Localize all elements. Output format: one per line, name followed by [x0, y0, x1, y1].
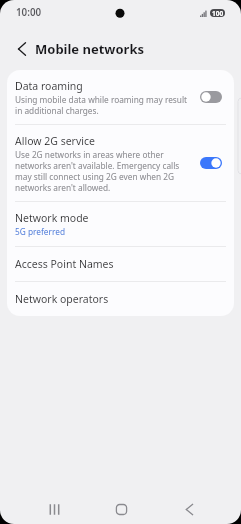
staticText: 10:00 [16, 6, 42, 19]
button[interactable]: Navigate up [9, 36, 35, 62]
button[interactable]: Data roaming [7, 70, 234, 124]
staticText: Network mode [15, 211, 89, 225]
staticText: Access Point Names [15, 257, 114, 271]
staticText: 100 [212, 9, 224, 17]
staticText: Network operators [15, 292, 109, 306]
button[interactable]: Allow 2G service [7, 125, 234, 201]
button[interactable]: Back [173, 493, 206, 524]
button[interactable]: Network mode [7, 202, 234, 246]
staticText: Using mobile data while roaming may resu… [15, 94, 192, 116]
staticText: Data roaming [15, 79, 83, 93]
button[interactable]: On [200, 157, 222, 169]
staticText: Allow 2G service [15, 134, 95, 148]
staticText: Use 2G networks in areas where other net… [15, 149, 192, 193]
staticText: Mobile networks [35, 40, 145, 58]
button[interactable]: Recent apps [38, 493, 71, 524]
button[interactable]: Access Point Names [7, 247, 234, 281]
button[interactable]: Off [200, 91, 222, 103]
button[interactable]: Network operators [7, 282, 234, 316]
button[interactable]: Home [105, 493, 138, 524]
staticText: 5G preferred [15, 226, 65, 237]
